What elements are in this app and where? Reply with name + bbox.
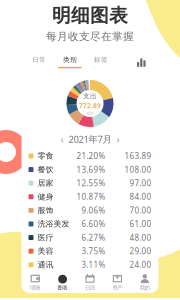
button[interactable]: Next month: [116, 132, 119, 146]
staticText: 标签: [94, 56, 108, 64]
button[interactable]: 通讯: [28, 258, 151, 271]
button[interactable]: Bar chart: [130, 56, 152, 68]
staticText: 48.00: [129, 232, 151, 243]
staticText: 6.60%: [81, 219, 105, 229]
staticText: 21.20%: [76, 151, 105, 161]
staticText: 772.89: [79, 101, 101, 110]
staticText: 日历: [85, 284, 95, 291]
staticText: 明细图表: [52, 4, 128, 27]
staticText: 我的: [140, 284, 150, 291]
button[interactable]: 日常: [23, 55, 54, 69]
staticText: 每月收支尽在掌握: [46, 30, 134, 43]
staticText: 29.00: [129, 246, 151, 256]
staticText: ›: [116, 132, 119, 146]
staticText: 9.06%: [81, 205, 105, 216]
staticText: 6.27%: [81, 232, 105, 243]
button[interactable]: 洗浴美发: [28, 217, 151, 231]
staticText: 13.69%: [76, 164, 105, 175]
staticText: 日常: [32, 56, 46, 64]
button[interactable]: 零食: [28, 149, 151, 163]
staticText: 24.00: [129, 259, 151, 270]
staticText: 2021年7月: [68, 133, 111, 145]
button[interactable]: 美容: [28, 244, 151, 258]
staticText: 70.00: [129, 205, 151, 216]
staticText: 97.00: [129, 178, 151, 188]
staticText: 108.00: [124, 164, 151, 175]
staticText: 服饰: [37, 205, 53, 215]
button[interactable]: 餐饮: [28, 163, 151, 176]
staticText: 支出: [83, 92, 97, 100]
staticText: 居家: [37, 178, 53, 188]
staticText: 12.55%: [76, 178, 105, 188]
staticText: 163.89: [124, 151, 151, 161]
staticText: 餐饮: [37, 165, 53, 174]
button[interactable]: 明细: [21, 271, 49, 293]
staticText: 通讯: [37, 260, 53, 270]
button[interactable]: 我的: [131, 271, 158, 293]
staticText: 3.11%: [81, 259, 105, 270]
staticText: 明细: [30, 284, 40, 291]
staticText: 61.00: [129, 219, 151, 229]
staticText: 健身: [37, 192, 53, 202]
button[interactable]: 健身: [28, 190, 151, 203]
button[interactable]: 日历: [76, 271, 104, 293]
staticText: 84.00: [129, 191, 151, 202]
staticText: 医疗: [37, 233, 53, 242]
staticText: 类别: [63, 56, 77, 64]
staticText: 资产: [112, 284, 122, 291]
staticText: 10.87%: [76, 191, 105, 202]
staticText: ‹: [60, 132, 63, 146]
button[interactable]: 标签: [85, 55, 116, 69]
button[interactable]: 居家: [28, 176, 151, 190]
staticText: 美容: [37, 246, 53, 256]
button[interactable]: Previous month: [60, 132, 63, 146]
staticText: 图表: [58, 284, 68, 291]
button[interactable]: 图表: [49, 271, 76, 293]
button[interactable]: 服饰: [28, 203, 151, 217]
staticText: 3.75%: [81, 246, 105, 256]
button[interactable]: 类别: [54, 55, 85, 69]
button[interactable]: 资产: [104, 271, 131, 293]
staticText: 零食: [37, 151, 53, 161]
staticText: 洗浴美发: [37, 219, 69, 229]
button[interactable]: 医疗: [28, 231, 151, 244]
